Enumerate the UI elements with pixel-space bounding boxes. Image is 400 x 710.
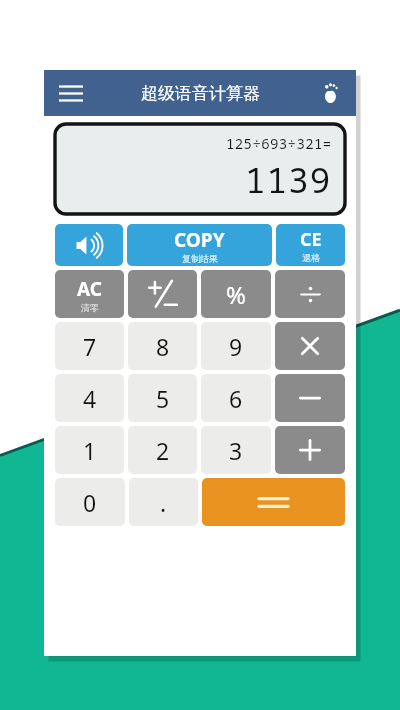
staticText: 复制结果 [182, 253, 218, 264]
button[interactable]: 1 [55, 426, 124, 474]
button[interactable]: Plus [275, 426, 345, 474]
button[interactable]: % [201, 270, 271, 318]
button[interactable]: 4 [55, 374, 124, 422]
staticText: AC [77, 276, 102, 302]
button[interactable]: 6 [201, 374, 271, 422]
staticText: . [160, 487, 167, 518]
button[interactable]: Menu [52, 74, 90, 112]
staticText: 退格 [302, 252, 320, 263]
button[interactable]: . [129, 478, 198, 526]
button[interactable]: Divide [275, 270, 345, 318]
button[interactable]: Minus [275, 374, 345, 422]
button[interactable]: 8 [128, 322, 197, 370]
staticText: % [226, 278, 246, 311]
staticText: 7 [83, 331, 97, 362]
staticText: 1139 [245, 157, 332, 203]
button[interactable]: 2 [128, 426, 197, 474]
button[interactable]: COPY [127, 224, 272, 266]
button[interactable]: Voice input [313, 76, 347, 110]
staticText: 3 [229, 435, 243, 466]
staticText: 9 [229, 331, 243, 362]
button[interactable]: Plus minus [128, 270, 197, 318]
staticText: 0 [83, 487, 97, 518]
staticText: CE [300, 227, 322, 252]
staticText: COPY [174, 227, 225, 253]
staticText: 清零 [81, 302, 99, 313]
button[interactable]: CE [276, 224, 345, 266]
button[interactable]: 5 [128, 374, 197, 422]
button[interactable]: Equals [202, 478, 345, 526]
button[interactable]: 9 [201, 322, 271, 370]
staticText: 5 [156, 383, 170, 414]
button[interactable]: Multiply [275, 322, 345, 370]
staticText: 4 [83, 383, 97, 414]
staticText: 6 [229, 383, 243, 414]
staticText: 125÷693÷321= [226, 134, 332, 153]
button[interactable]: Speak result [55, 224, 123, 266]
button[interactable]: 7 [55, 322, 124, 370]
staticText: 8 [156, 331, 170, 362]
staticText: 超级语音计算器 [141, 83, 260, 104]
staticText: 2 [156, 435, 170, 466]
staticText: 1 [83, 435, 97, 466]
button[interactable]: 3 [201, 426, 271, 474]
button[interactable]: 0 [55, 478, 125, 526]
button[interactable]: AC [55, 270, 124, 318]
